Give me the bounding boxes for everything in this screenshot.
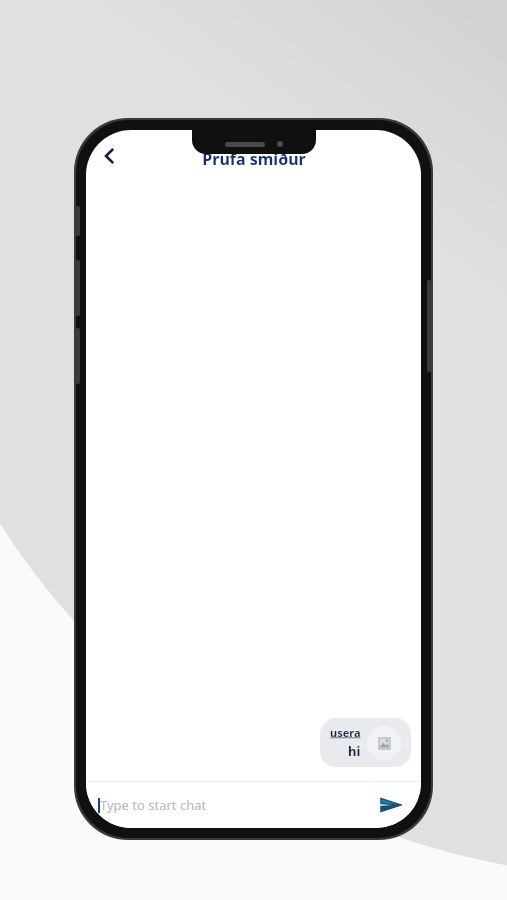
staticText: usera: [330, 725, 361, 740]
button[interactable]: Type to start chat: [98, 796, 375, 814]
staticText: Type to start chat: [100, 796, 207, 814]
staticText: hi: [348, 742, 361, 760]
button[interactable]: Send: [375, 789, 407, 821]
button[interactable]: Back: [90, 136, 130, 176]
button[interactable]: usera: [320, 718, 411, 767]
staticText: Prufa smiður: [202, 148, 306, 170]
